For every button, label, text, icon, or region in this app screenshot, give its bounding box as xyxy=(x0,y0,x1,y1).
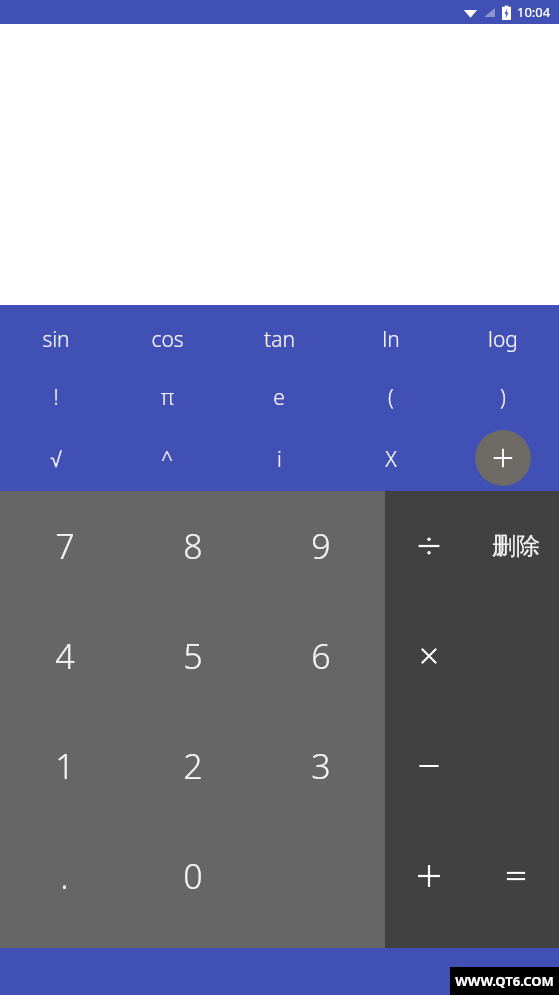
button[interactable]: 3 xyxy=(257,711,385,821)
staticText: cos xyxy=(151,325,184,354)
button[interactable]: 4 xyxy=(0,601,129,711)
button[interactable]: 8 xyxy=(129,491,257,601)
staticText: 1 xyxy=(55,743,75,789)
button[interactable]: sin xyxy=(0,313,111,366)
staticText: log xyxy=(488,325,518,354)
staticText: i xyxy=(277,445,282,474)
staticText: sin xyxy=(42,325,70,354)
staticText: 8 xyxy=(183,523,203,569)
staticText: 0 xyxy=(183,853,203,899)
staticText: 7 xyxy=(55,523,75,569)
button[interactable]: 9 xyxy=(257,491,385,601)
button[interactable]: ( xyxy=(335,366,447,428)
button[interactable]: π xyxy=(111,366,223,428)
button[interactable]: 0 xyxy=(129,821,257,931)
staticText: WWW.QT6.COM xyxy=(455,972,554,990)
button[interactable]: e xyxy=(223,366,335,428)
button[interactable]: Equals xyxy=(472,821,559,931)
button[interactable]: 2 xyxy=(129,711,257,821)
button[interactable]: 5 xyxy=(129,601,257,711)
staticText: tan xyxy=(264,325,295,354)
staticText: √ xyxy=(50,448,62,471)
staticText: ( xyxy=(388,383,394,412)
staticText: ln xyxy=(382,325,400,354)
staticText: 3 xyxy=(311,743,331,789)
button[interactable]: 6 xyxy=(257,601,385,711)
staticText: e xyxy=(273,383,285,412)
staticText: 9 xyxy=(311,523,331,569)
staticText: 2 xyxy=(183,743,203,789)
staticText: π xyxy=(161,383,174,412)
button[interactable]: ) xyxy=(447,366,559,428)
staticText: 4 xyxy=(55,633,75,679)
button[interactable]: Multiply xyxy=(385,601,472,711)
button[interactable]: More functions xyxy=(475,430,531,486)
staticText: ) xyxy=(500,383,506,412)
button[interactable]: ! xyxy=(0,366,111,428)
button[interactable]: 7 xyxy=(0,491,129,601)
button[interactable]: tan xyxy=(223,313,335,366)
staticText: ^ xyxy=(161,445,173,474)
button[interactable]: i xyxy=(223,428,335,491)
button[interactable]: Add xyxy=(385,821,472,931)
button[interactable]: . xyxy=(0,821,129,931)
staticText: 5 xyxy=(183,633,203,679)
button[interactable]: 删除 xyxy=(472,491,559,601)
button[interactable]: 1 xyxy=(0,711,129,821)
button[interactable]: √ xyxy=(0,428,111,491)
staticText: ! xyxy=(53,383,59,412)
button[interactable]: Divide xyxy=(385,491,472,601)
button[interactable]: log xyxy=(447,313,559,366)
button[interactable]: Subtract xyxy=(385,711,472,821)
button[interactable]: ^ xyxy=(111,428,223,491)
button[interactable]: cos xyxy=(111,313,223,366)
staticText: 6 xyxy=(311,633,331,679)
staticText: 删除 xyxy=(492,531,540,561)
button[interactable]: X xyxy=(335,428,447,491)
staticText: X xyxy=(385,445,397,474)
staticText: . xyxy=(60,853,69,899)
staticText: 10:04 xyxy=(517,3,551,21)
button[interactable]: ln xyxy=(335,313,447,366)
